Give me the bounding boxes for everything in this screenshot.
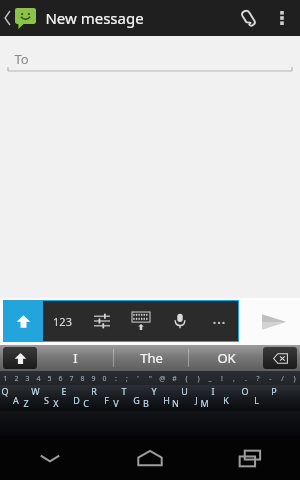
staticText: ,	[233, 374, 235, 384]
button[interactable]: Hide keyboard	[0, 436, 100, 480]
button[interactable]: I	[38, 345, 113, 371]
staticText: K	[223, 394, 229, 406]
staticText: N	[172, 397, 179, 409]
staticText: S	[44, 394, 49, 406]
button[interactable]: Attach	[228, 0, 268, 36]
button[interactable]: The	[114, 345, 188, 371]
button[interactable]: U	[180, 385, 210, 411]
button[interactable]: !	[216, 373, 228, 384]
button[interactable]: Q	[0, 385, 30, 411]
button[interactable]: O	[240, 385, 270, 411]
button[interactable]: ,	[228, 373, 240, 384]
button[interactable]: Y	[150, 385, 180, 411]
staticText: :	[115, 374, 117, 384]
staticText: 4	[36, 374, 41, 384]
button[interactable]: "	[144, 373, 156, 384]
button[interactable]: Change keyboard	[121, 301, 160, 341]
button[interactable]: Delete	[263, 345, 300, 371]
staticText: 8	[80, 374, 85, 384]
button[interactable]: R	[90, 385, 120, 411]
button[interactable]: _	[204, 373, 216, 384]
button[interactable]: 5	[44, 373, 55, 384]
staticText: I	[211, 385, 215, 397]
button[interactable]: ;	[121, 373, 132, 384]
staticText: Y	[151, 385, 157, 397]
staticText: J	[195, 394, 198, 406]
button[interactable]: 1	[0, 373, 11, 384]
staticText: @	[159, 374, 166, 384]
staticText: H	[163, 394, 170, 406]
staticText: L	[254, 394, 259, 406]
button[interactable]: 123	[43, 301, 82, 341]
staticText: )	[197, 374, 200, 384]
staticText: 7	[69, 374, 74, 384]
staticText: O	[241, 385, 249, 397]
staticText: Q	[1, 385, 9, 397]
staticText: F	[104, 394, 109, 406]
button[interactable]: Voice input	[160, 301, 199, 341]
button[interactable]: W	[30, 385, 60, 411]
staticText: To	[14, 50, 29, 68]
staticText: -	[269, 374, 272, 384]
staticText: G	[133, 394, 140, 406]
staticText: P	[271, 385, 277, 397]
button[interactable]: Home	[100, 436, 200, 480]
staticText: 1	[3, 374, 8, 384]
button[interactable]: More	[199, 301, 238, 341]
staticText: U	[181, 385, 188, 397]
staticText: A	[13, 394, 19, 406]
button[interactable]: I	[210, 385, 240, 411]
staticText: 123	[53, 314, 72, 329]
button[interactable]: (	[180, 373, 192, 384]
button[interactable]: :	[110, 373, 121, 384]
button[interactable]: #	[168, 373, 180, 384]
button[interactable]: Shift	[3, 300, 43, 342]
staticText: V	[113, 397, 119, 409]
button[interactable]: 3	[22, 373, 33, 384]
button[interactable]: 2	[11, 373, 22, 384]
button[interactable]: T	[120, 385, 150, 411]
button[interactable]: Settings	[82, 301, 121, 341]
button[interactable]: .	[240, 373, 252, 384]
button[interactable]: More options	[268, 0, 296, 36]
staticText: B	[143, 397, 149, 409]
button[interactable]: @	[156, 373, 168, 384]
staticText: .	[245, 374, 247, 384]
button[interactable]: '	[132, 373, 144, 384]
staticText: Z	[23, 397, 29, 409]
staticText: 3	[25, 374, 30, 384]
staticText: 9	[91, 374, 96, 384]
button[interactable]: 4	[33, 373, 44, 384]
staticText: _	[208, 374, 212, 384]
button[interactable]: 0	[99, 373, 110, 384]
button[interactable]: 7	[66, 373, 77, 384]
button[interactable]: -	[264, 373, 276, 384]
staticText: "	[149, 374, 152, 384]
button[interactable]: Send	[248, 298, 300, 345]
staticText: 5	[47, 374, 52, 384]
button[interactable]: Navigate up	[0, 0, 38, 36]
button[interactable]: Recent apps	[200, 436, 300, 480]
staticText: 0	[102, 374, 107, 384]
staticText: W	[31, 385, 40, 397]
staticText: 2	[14, 374, 19, 384]
button[interactable]: 8	[77, 373, 88, 384]
staticText: (	[185, 374, 188, 384]
button[interactable]: P	[270, 385, 300, 411]
staticText: New message	[45, 8, 144, 28]
button[interactable]: 6	[55, 373, 66, 384]
button[interactable]: OK	[189, 345, 263, 371]
button[interactable]: )	[288, 373, 300, 384]
staticText: R	[91, 385, 97, 397]
button[interactable]: ?	[252, 373, 264, 384]
button[interactable]: /	[276, 373, 288, 384]
staticText: The	[140, 349, 163, 367]
button[interactable]: E	[60, 385, 90, 411]
button[interactable]: 9	[88, 373, 99, 384]
staticText: D	[73, 394, 80, 406]
button[interactable]: )	[192, 373, 204, 384]
button[interactable]: To	[8, 46, 292, 72]
staticText: ;	[126, 374, 128, 384]
button[interactable]: Shift	[0, 345, 37, 371]
staticText: )	[293, 374, 296, 384]
